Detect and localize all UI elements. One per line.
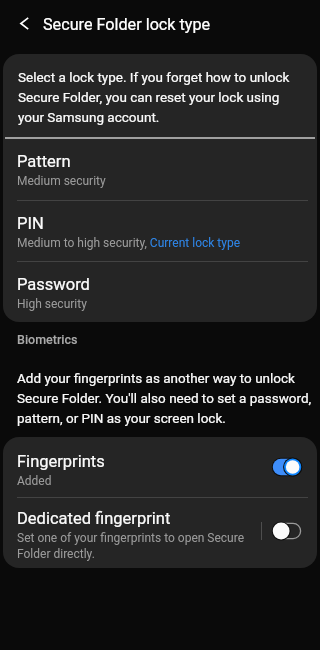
- staticText: Pattern: [17, 152, 71, 171]
- button[interactable]: Fingerprints, on: [270, 455, 304, 479]
- button[interactable]: Fingerprints: [3, 437, 317, 497]
- button[interactable]: Dedicated fingerprint: [3, 498, 317, 568]
- staticText: Fingerprints: [17, 452, 105, 471]
- staticText: Secure Folder lock type: [43, 15, 211, 34]
- staticText: Set one of your fingerprints to open Sec…: [17, 531, 247, 561]
- staticText: Add your fingerprints as another way to …: [17, 370, 315, 427]
- staticText: Biometrics: [17, 332, 78, 347]
- button[interactable]: Dedicated fingerprint, off: [270, 519, 304, 543]
- button[interactable]: PIN: [3, 201, 317, 261]
- staticText: Medium security: [17, 174, 106, 188]
- button[interactable]: Pattern: [3, 138, 317, 200]
- staticText: Added: [17, 474, 52, 488]
- button[interactable]: Password: [3, 262, 317, 322]
- staticText: Password: [17, 275, 90, 294]
- staticText: Medium to high security, Current lock ty…: [17, 236, 241, 250]
- staticText: Select a lock type. If you forget how to…: [18, 69, 300, 126]
- staticText: Dedicated fingerprint: [17, 509, 171, 528]
- button[interactable]: Back: [16, 16, 32, 30]
- staticText: High security: [17, 297, 87, 311]
- staticText: PIN: [17, 214, 44, 233]
